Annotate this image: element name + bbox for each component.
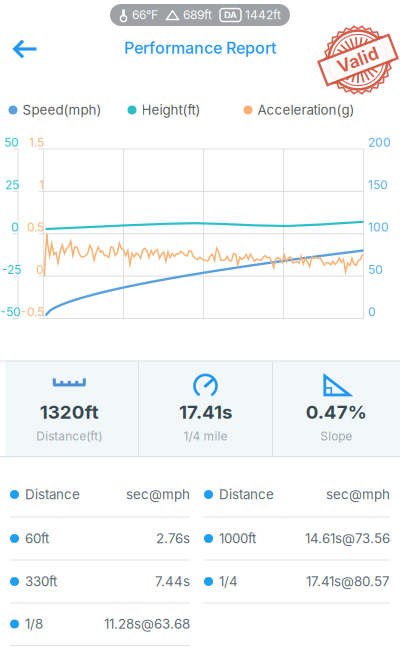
staticText: 330ft: [25, 574, 57, 589]
staticText: 50: [368, 262, 383, 277]
staticText: 1.5: [29, 135, 44, 150]
staticText: 17.41s: [179, 401, 232, 423]
staticText: Distance(ft): [36, 429, 102, 443]
staticText: 0: [36, 262, 44, 277]
staticText: sec@mph: [326, 487, 390, 502]
staticText: 689ft: [183, 8, 212, 22]
staticText: 1/8: [25, 616, 43, 632]
staticText: 1/4: [219, 574, 238, 589]
staticText: DA: [224, 9, 237, 20]
staticText: 200: [368, 135, 391, 150]
button[interactable]: Back: [4, 31, 45, 66]
staticText: 1320ft: [40, 401, 99, 423]
staticText: Height(ft): [141, 102, 200, 118]
staticText: Valid: [336, 50, 379, 70]
staticText: Distance: [219, 487, 274, 502]
staticText: 14.61s@73.56: [305, 531, 390, 546]
staticText: 50: [4, 135, 19, 150]
staticText: 66°F: [132, 8, 158, 22]
staticText: 150: [368, 178, 388, 192]
staticText: 60ft: [25, 531, 49, 546]
staticText: Slope: [320, 429, 352, 443]
staticText: sec@mph: [126, 487, 190, 502]
staticText: 7.44s: [155, 574, 190, 589]
staticText: 1/4 mile: [183, 429, 227, 443]
staticText: 17.41s@80.57: [306, 574, 390, 589]
staticText: Performance Report: [124, 39, 276, 57]
staticText: Speed(mph): [22, 102, 101, 118]
staticText: Acceleration(g): [257, 102, 354, 118]
staticText: 2.76s: [156, 531, 190, 546]
staticText: 1442ft: [245, 8, 281, 22]
staticText: 100: [368, 220, 389, 234]
staticText: 0.5: [27, 220, 44, 234]
staticText: -50: [0, 305, 21, 319]
staticText: -0.5: [21, 305, 44, 319]
staticText: -25: [2, 262, 21, 277]
staticText: 0: [11, 220, 19, 234]
staticText: 11.28s@63.68: [104, 616, 190, 632]
staticText: 1: [39, 178, 44, 192]
staticText: 25: [5, 178, 19, 192]
staticText: Distance: [25, 487, 80, 502]
staticText: 0.47%: [306, 401, 367, 423]
staticText: 0: [368, 305, 376, 319]
staticText: 1000ft: [219, 531, 256, 546]
